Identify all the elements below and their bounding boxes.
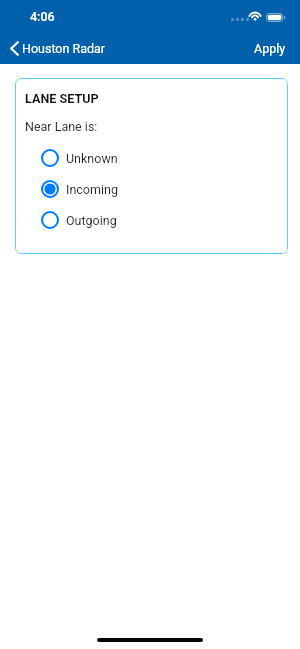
button[interactable]: Back [8,39,112,58]
button[interactable]: Apply [242,39,300,58]
button[interactable]: Outgoing [15,204,288,235]
staticText: Apply [254,41,286,56]
staticText: Incoming [66,182,118,197]
staticText: Houston Radar [22,41,106,56]
button[interactable]: Incoming [15,173,288,204]
staticText: Outgoing [66,213,117,228]
staticText: LANE SETUP [25,91,99,106]
staticText: 4:06 [30,9,55,24]
button[interactable]: Unknown [15,142,288,173]
staticText: Unknown [66,151,118,166]
staticText: Near Lane is: [25,119,98,134]
